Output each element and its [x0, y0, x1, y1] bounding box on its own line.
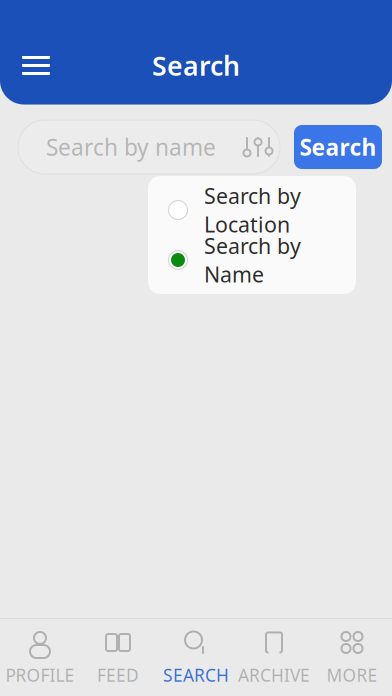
button[interactable]: ARCHIVE — [235, 619, 313, 696]
button[interactable]: Search by Location — [148, 185, 356, 235]
button[interactable]: FEED — [79, 619, 157, 696]
staticText: FEED — [97, 663, 139, 686]
button[interactable]: SEARCH — [157, 619, 235, 696]
button[interactable]: MORE — [313, 619, 391, 696]
staticText: Search — [299, 132, 376, 162]
staticText: PROFILE — [5, 663, 74, 686]
staticText: SEARCH — [163, 663, 229, 686]
button[interactable]: Menu — [12, 43, 60, 87]
button[interactable]: PROFILE — [1, 619, 79, 696]
staticText: Search by Location — [204, 182, 301, 238]
staticText: Search — [152, 48, 240, 83]
button[interactable]: Filter options — [236, 122, 280, 172]
staticText: MORE — [326, 663, 377, 686]
staticText: Search by Name — [204, 232, 301, 288]
staticText: ARCHIVE — [238, 663, 310, 686]
staticText: Search by name — [46, 132, 216, 162]
button[interactable]: Search — [294, 125, 382, 169]
button[interactable]: Search by Name — [148, 235, 356, 285]
